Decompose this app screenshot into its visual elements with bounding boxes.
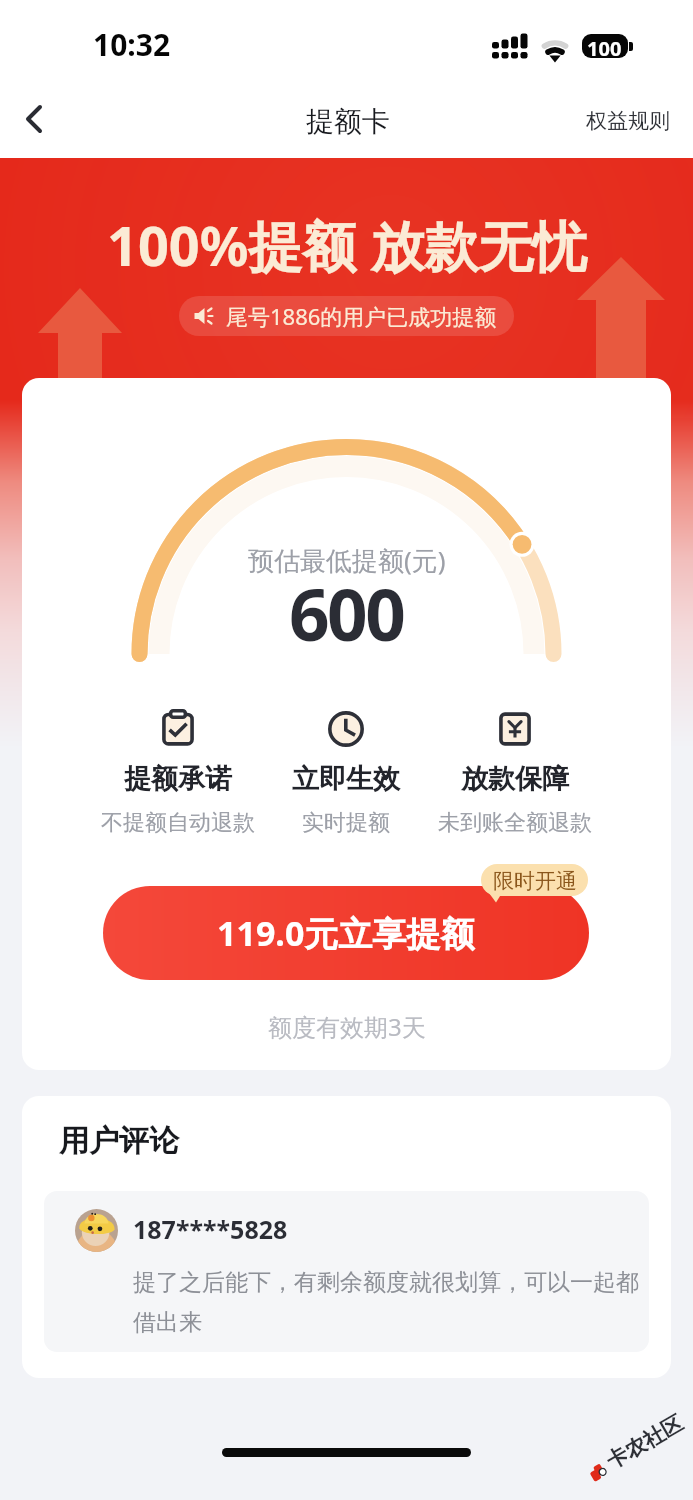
staticText: 实时提额 [302,809,390,837]
button[interactable]: Back [3,90,63,150]
staticText: 卡农社区 [602,1410,687,1474]
staticText: 额度有效期3天 [268,1010,426,1043]
staticText: 100 [587,35,622,59]
staticText: 600 [289,565,404,662]
staticText: 用户评论 [59,1122,179,1160]
staticText: 提额承诺 [124,762,232,796]
staticText: 限时开通 [493,868,577,894]
button[interactable]: 权益规则 [586,108,670,134]
staticText: 立即生效 [292,762,400,796]
staticText: 未到账全额退款 [438,809,592,837]
staticText: 放款保障 [461,762,569,796]
staticText: 100%提额 放款无忧 [107,208,587,282]
button[interactable]: 119.0元立享提额 [103,886,589,980]
staticText: 尾号1886的用户已成功提额 [226,301,497,331]
staticText: 119.0元立享提额 [217,910,475,956]
staticText: 提额卡 [306,104,390,139]
staticText: 187****5828 [133,1212,288,1246]
staticText: 10:32 [93,24,171,65]
staticText: 不提额自动退款 [101,809,255,837]
staticText: 预估最低提额(元) [248,542,446,578]
staticText: 提了之后能下，有剩余额度就很划算，可以一起都 借出来 [133,1268,649,1337]
